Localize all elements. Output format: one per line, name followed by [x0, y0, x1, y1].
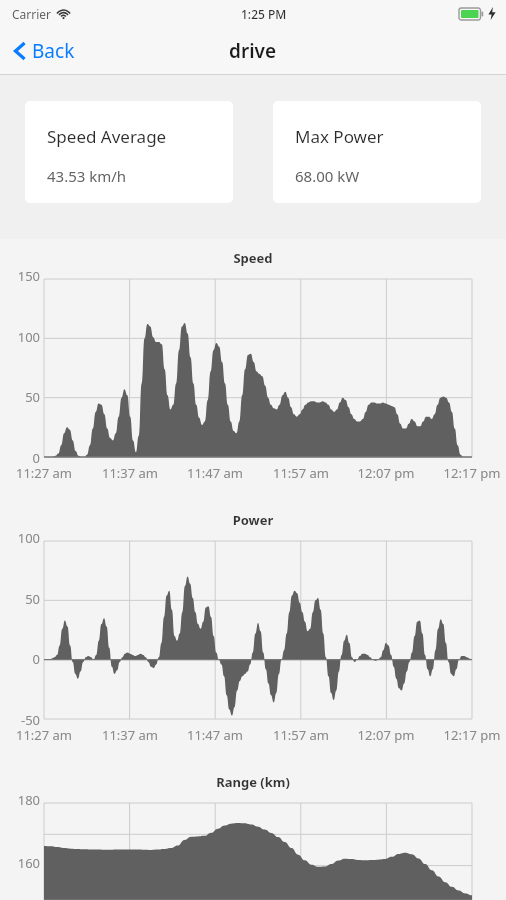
button[interactable]: Speed Average: [25, 101, 233, 203]
staticText: Range (km): [0, 773, 506, 791]
staticText: 11:57 am: [267, 726, 335, 744]
staticText: 50: [2, 388, 40, 406]
staticText: 160: [2, 854, 40, 872]
staticText: 11:27 am: [10, 464, 78, 482]
staticText: 11:27 am: [10, 726, 78, 744]
staticText: 11:47 am: [181, 726, 249, 744]
staticText: 11:57 am: [267, 464, 335, 482]
button[interactable]: Max Power: [273, 101, 481, 203]
staticText: Max Power: [295, 125, 384, 148]
staticText: drive: [229, 38, 277, 64]
staticText: 150: [2, 267, 40, 285]
staticText: Power: [0, 511, 506, 529]
staticText: Back: [32, 38, 75, 64]
staticText: 0: [2, 449, 40, 467]
staticText: Carrier: [12, 6, 52, 22]
staticText: 12:17 pm: [438, 726, 506, 744]
staticText: 50: [2, 590, 40, 608]
staticText: 180: [2, 791, 40, 809]
staticText: 11:37 am: [96, 726, 164, 744]
staticText: 12:07 pm: [352, 726, 420, 744]
staticText: 100: [2, 529, 40, 547]
staticText: Speed: [0, 249, 506, 267]
staticText: 11:37 am: [96, 464, 164, 482]
staticText: 100: [2, 328, 40, 346]
staticText: 12:17 pm: [438, 464, 506, 482]
staticText: -50: [2, 711, 40, 729]
staticText: 68.00 kW: [295, 166, 360, 186]
staticText: 1:25 PM: [241, 6, 287, 22]
staticText: 43.53 km/h: [47, 166, 127, 186]
staticText: 0: [2, 650, 40, 668]
staticText: Speed Average: [47, 125, 167, 148]
button[interactable]: Back: [10, 32, 79, 70]
staticText: 11:47 am: [181, 464, 249, 482]
staticText: 12:07 pm: [352, 464, 420, 482]
